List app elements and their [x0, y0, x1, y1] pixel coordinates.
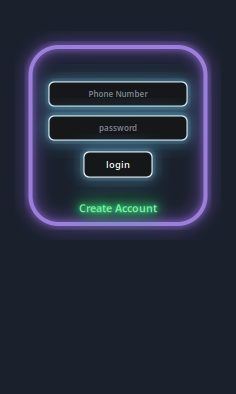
button[interactable]: Phone Number [49, 82, 187, 106]
staticText: login [106, 158, 130, 171]
button[interactable]: password [49, 116, 187, 140]
staticText: password [99, 123, 137, 133]
staticText: Phone Number [88, 89, 147, 99]
button[interactable]: Create Account [79, 201, 157, 215]
button[interactable]: login [84, 152, 152, 177]
staticText: Create Account [79, 201, 157, 215]
